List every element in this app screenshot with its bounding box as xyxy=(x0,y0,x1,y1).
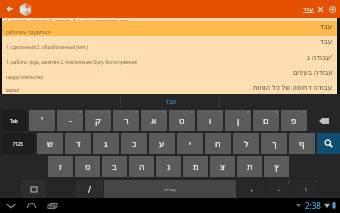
button[interactable]: ם xyxy=(253,110,279,131)
button[interactable]: ג xyxy=(93,133,119,154)
staticText: ז xyxy=(59,162,62,172)
staticText: надругательство xyxy=(6,74,44,80)
staticText: ל xyxy=(244,139,249,149)
staticText: 0 xyxy=(303,110,306,115)
button[interactable]: 1. создать, сделать 2. усилить 3. книга … xyxy=(2,18,337,21)
staticText: работать, трудиться xyxy=(6,29,51,35)
button[interactable]: ע xyxy=(149,133,175,154)
button[interactable]: ץ xyxy=(264,156,289,177)
button[interactable]: Search xyxy=(317,133,340,154)
button[interactable]: / xyxy=(76,180,103,198)
button[interactable]: עבד xyxy=(2,21,337,36)
button[interactable]: ש xyxy=(37,133,63,154)
button[interactable]: פ xyxy=(281,110,307,131)
button[interactable]: ד xyxy=(65,133,91,154)
staticText: ?123 xyxy=(13,141,23,147)
staticText: עבודה דחופה של כל הצוות xyxy=(253,83,333,93)
button[interactable]: עבודה בעינים xyxy=(2,66,337,81)
button[interactable]: עבד xyxy=(123,94,218,110)
staticText: 1. создать, сделать 2. усилить 3. книга … xyxy=(6,18,130,21)
button[interactable]: - xyxy=(57,110,83,131)
staticText: 9 xyxy=(275,110,278,115)
button[interactable]: ן xyxy=(225,110,251,131)
button[interactable]: ' xyxy=(29,110,55,131)
button[interactable]: Tab xyxy=(1,110,27,131)
button[interactable]: ק xyxy=(85,110,111,131)
staticText: ג xyxy=(104,139,108,149)
staticText: ח xyxy=(215,139,221,149)
staticText: עברית xyxy=(164,187,176,192)
staticText: 8 xyxy=(247,110,250,115)
button[interactable]: עבד xyxy=(2,36,337,51)
button[interactable]: א xyxy=(141,110,167,131)
staticText: " xyxy=(315,180,317,185)
button[interactable]: ז xyxy=(48,156,73,177)
button[interactable]: Backspace xyxy=(308,110,340,131)
staticText: 7 xyxy=(219,110,222,115)
button[interactable]: ?123 xyxy=(1,133,35,154)
button[interactable]: צ xyxy=(210,156,235,177)
staticText: צ xyxy=(220,162,226,172)
button[interactable]: נ xyxy=(156,156,181,177)
staticText: נ xyxy=(167,162,171,172)
staticText: ? xyxy=(288,180,290,185)
button[interactable]: ב xyxy=(102,156,127,177)
button[interactable]: ף xyxy=(289,133,315,154)
staticText: א xyxy=(151,116,157,126)
staticText: 4 xyxy=(135,110,138,115)
staticText: аврал xyxy=(6,87,20,93)
button[interactable]: Clear xyxy=(314,3,326,15)
staticText: 2:38 xyxy=(305,200,321,211)
staticText: 5 xyxy=(163,110,166,115)
button[interactable]: כ xyxy=(121,133,147,154)
button[interactable]: ל xyxy=(233,133,259,154)
button[interactable]: , xyxy=(239,180,264,198)
button[interactable]: ר xyxy=(113,110,139,131)
staticText: : xyxy=(305,185,307,193)
button[interactable]: ח xyxy=(205,133,231,154)
button[interactable]: Recent apps xyxy=(42,198,63,213)
button[interactable]: . xyxy=(266,180,291,198)
staticText: 3 xyxy=(107,110,110,115)
button[interactable]: Home xyxy=(21,198,42,213)
staticText: עבודה בעינים xyxy=(293,68,333,78)
staticText: עבד xyxy=(303,5,314,12)
button[interactable]: ך xyxy=(261,133,287,154)
button[interactable]: עבד xyxy=(303,5,314,13)
staticText: ד xyxy=(76,139,81,149)
staticText: - xyxy=(69,115,72,127)
staticText: ' xyxy=(262,180,263,185)
staticText: 1. работа, труд, занятие 2. поклонение Б… xyxy=(6,59,138,65)
staticText: ר xyxy=(124,116,129,126)
staticText: עבודה ג' xyxy=(307,53,333,63)
staticText: ס xyxy=(85,162,91,172)
staticText: ת xyxy=(247,162,253,172)
button[interactable]: ט xyxy=(169,110,195,131)
button[interactable]: ת xyxy=(237,156,262,177)
button[interactable]: ה xyxy=(129,156,154,177)
staticText: ה xyxy=(139,162,145,172)
button[interactable]: ס xyxy=(75,156,100,177)
button[interactable]: מ xyxy=(183,156,208,177)
button[interactable]: : xyxy=(293,180,318,198)
button[interactable]: App xyxy=(16,0,34,18)
button[interactable]: Space xyxy=(104,180,236,198)
button[interactable]: Add xyxy=(326,3,338,15)
button[interactable]: Hide keyboard xyxy=(0,198,21,213)
staticText: פ xyxy=(291,116,297,126)
button[interactable]: Back xyxy=(1,0,19,18)
staticText: 6 xyxy=(191,110,194,115)
staticText: . xyxy=(278,185,280,193)
staticText: ט xyxy=(179,116,185,126)
button[interactable]: ו xyxy=(197,110,223,131)
button[interactable]: Keyboard settings xyxy=(21,180,46,198)
staticText: ב xyxy=(112,162,117,172)
button[interactable]: עבודה ג' xyxy=(2,51,337,66)
staticText: ף xyxy=(299,139,305,149)
staticText: מ xyxy=(193,162,199,172)
staticText: עבד xyxy=(320,38,333,46)
button[interactable]: י xyxy=(177,133,203,154)
button[interactable]: עבודה דחופה של כל הצוות xyxy=(2,81,337,94)
